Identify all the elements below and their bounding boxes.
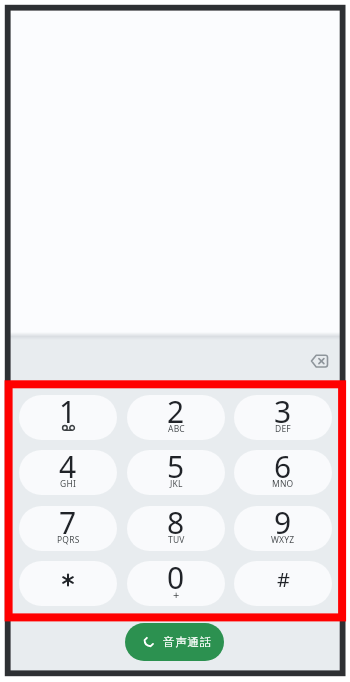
staticText: JKL <box>170 478 183 490</box>
button[interactable] <box>19 561 117 606</box>
staticText: + <box>173 587 180 602</box>
button[interactable]: 1 <box>19 395 117 440</box>
button[interactable]: 4 <box>19 450 117 495</box>
button[interactable]: 5 <box>127 450 225 495</box>
staticText: 3 <box>274 395 292 432</box>
staticText: GHI <box>60 478 76 490</box>
staticText: 音声通話 <box>163 635 213 649</box>
staticText: 5 <box>167 450 185 487</box>
staticText: PQRS <box>57 534 80 546</box>
staticText: DEF <box>275 423 291 435</box>
button[interactable]: 8 <box>127 506 225 551</box>
staticText: 0 <box>167 561 185 598</box>
button[interactable] <box>306 349 334 373</box>
button[interactable]: 3 <box>234 395 332 440</box>
staticText: 1 <box>59 395 77 432</box>
staticText: 7 <box>59 506 77 543</box>
button[interactable]: 0 <box>127 561 225 606</box>
staticText: TUV <box>168 534 185 546</box>
staticText: 2 <box>167 395 185 432</box>
button[interactable]: 6 <box>234 450 332 495</box>
staticText: 8 <box>167 506 185 543</box>
staticText: 6 <box>274 450 292 487</box>
staticText: ABC <box>168 423 185 435</box>
staticText: 4 <box>59 450 77 487</box>
button[interactable]: 7 <box>19 506 117 551</box>
button[interactable]: 9 <box>234 506 332 551</box>
staticText: WXYZ <box>271 534 295 546</box>
button[interactable]: 2 <box>127 395 225 440</box>
staticText: # <box>277 566 290 593</box>
staticText: 9 <box>274 506 292 543</box>
button[interactable]: 音声通話 <box>125 623 224 661</box>
staticText: MNO <box>272 478 294 490</box>
button[interactable]: # <box>234 561 332 606</box>
